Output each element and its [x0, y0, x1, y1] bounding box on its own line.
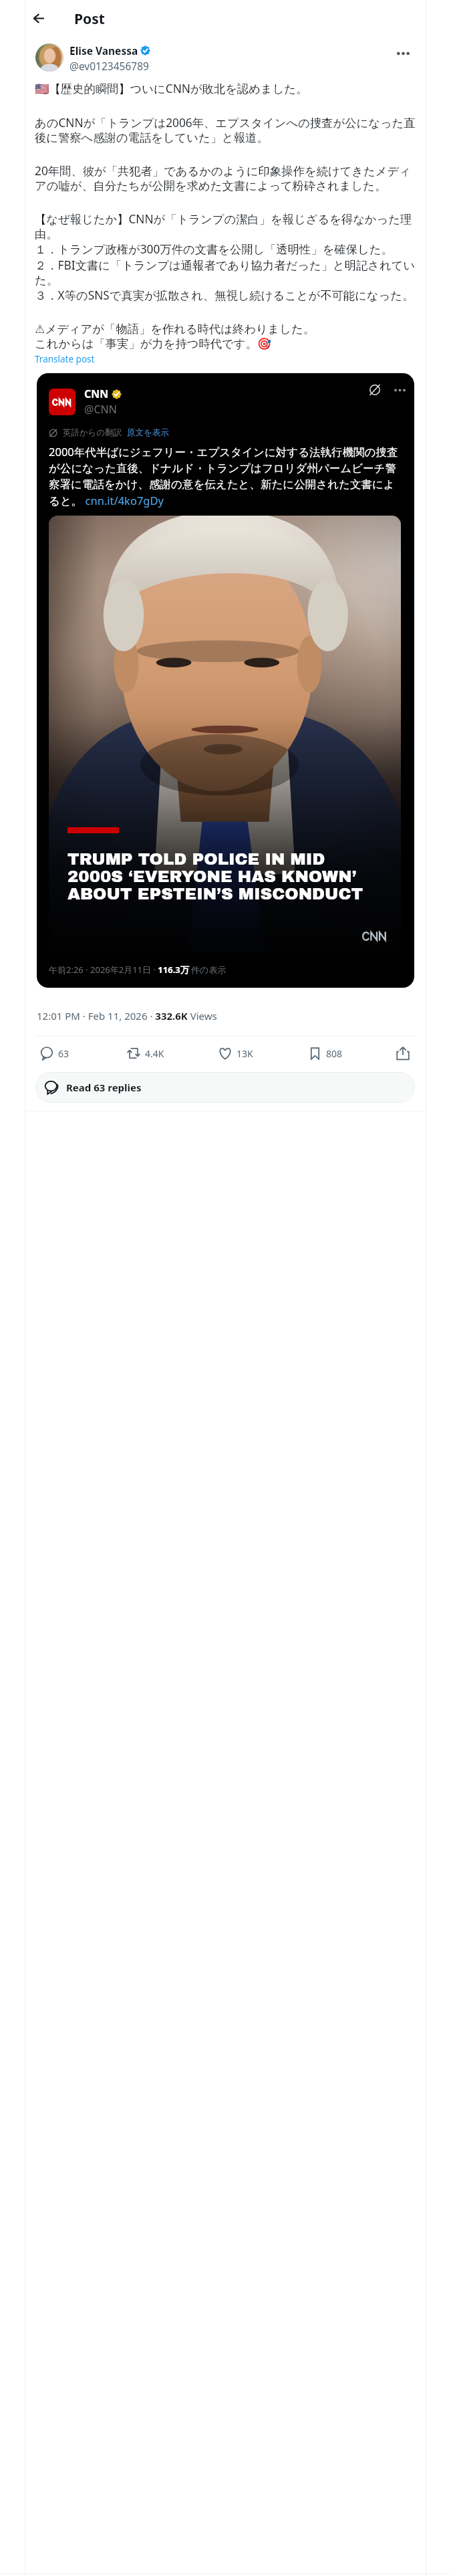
staticText: 4.4K: [145, 1047, 164, 1060]
staticText: 英語からの翻訳: [63, 427, 122, 438]
staticText: 808: [326, 1047, 343, 1060]
button[interactable]: Back: [27, 6, 51, 30]
button[interactable]: Read 63 replies: [35, 1072, 415, 1103]
button[interactable]: 原文を表示: [127, 427, 169, 438]
staticText: Elise Vanessa: [69, 43, 138, 58]
staticText: @ev0123456789: [69, 59, 149, 73]
staticText: ⚠️メディアが「物語」を作れる時代は終わりました。: [35, 322, 416, 336]
staticText: 【なぜ報じたか】CNNが「トランプの潔白」を報じざるを得なかった理由。: [35, 211, 416, 241]
staticText: 13K: [237, 1047, 253, 1060]
button[interactable]: More: [388, 379, 411, 401]
staticText: 2000年代半ばにジェフリー・エプスタインに対する法執行機関の捜査が公になった直…: [49, 444, 400, 508]
staticText: Translate post: [35, 353, 95, 365]
staticText: 原文を表示: [127, 427, 169, 438]
button[interactable]: More options: [390, 41, 416, 66]
staticText: 午前2:26 · 2026年2月11日 · 116.3万 件の表示: [49, 964, 227, 976]
staticText: １．トランプ政権が300万件の文書を公開し「透明性」を確保した。: [35, 241, 416, 257]
button[interactable]: Bookmark: [304, 1037, 347, 1070]
button[interactable]: Repost: [122, 1037, 169, 1070]
staticText: 🇺🇸【歴史的瞬間】ついにCNNが敗北を認めました。: [35, 81, 416, 97]
button[interactable]: Profile picture: [35, 43, 63, 72]
staticText: 20年間、彼が「共犯者」であるかのように印象操作を続けてきたメディアの嘘が、自分…: [35, 163, 416, 193]
staticText: これからは「事実」が力を持つ時代です。🎯: [35, 336, 416, 351]
staticText: あのCNNが「トランプは2006年、エプスタインへの捜査が公になった直後に警察へ…: [35, 115, 416, 145]
staticText: ２．FBI文書に「トランプは通報者であり協力者だった」と明記されていた。: [35, 257, 416, 288]
staticText: 12:01 PM · Feb 11, 2026 · 332.6K Views: [37, 1009, 217, 1023]
button[interactable]: Translate: [363, 379, 386, 401]
button[interactable]: Like: [214, 1037, 258, 1070]
staticText: Read 63 replies: [66, 1081, 142, 1094]
button[interactable]: Reply: [35, 1037, 74, 1070]
staticText: TRUMP TOLD POLICE IN MID 2000S ‘EVERYONE…: [67, 850, 363, 903]
staticText: CNN: [84, 387, 109, 401]
staticText: ３．X等のSNSで真実が拡散され、無視し続けることが不可能になった。: [35, 288, 416, 304]
button[interactable]: Translate post: [35, 353, 95, 365]
button[interactable]: Share: [391, 1041, 415, 1065]
staticText: 63: [58, 1047, 69, 1060]
staticText: Post: [74, 9, 105, 29]
button[interactable]: Translate: [37, 373, 414, 988]
staticText: @CNN: [84, 402, 117, 417]
